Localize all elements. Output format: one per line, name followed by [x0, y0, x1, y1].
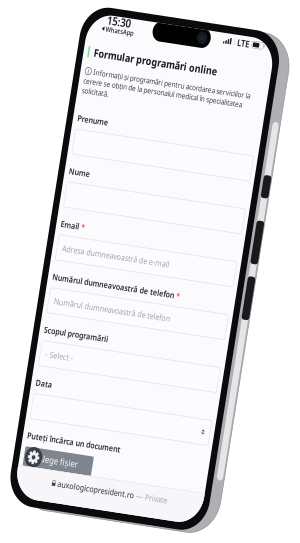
staticText: 15:30 — [51, 8, 101, 35]
staticText: Informații și programări pentru acordare… — [40, 106, 300, 123]
staticText: Numărul dumneavoastră de telefon — [33, 508, 278, 528]
button[interactable]: WhatsApp — [43, 31, 110, 44]
staticText: Adresa dumneavoastră de e-mail — [33, 415, 259, 435]
staticText: WhatsApp — [51, 29, 110, 45]
staticText: Email — [22, 374, 61, 393]
staticText: cerere se obțin de la personalul medical… — [22, 123, 300, 140]
staticText: Formular programări online — [34, 69, 294, 93]
staticText: Numărul dumneavoastră de telefon — [22, 467, 279, 486]
staticText: Nume — [22, 281, 66, 300]
staticText: Prenume — [22, 188, 87, 207]
staticText: solicitată. — [22, 140, 79, 157]
